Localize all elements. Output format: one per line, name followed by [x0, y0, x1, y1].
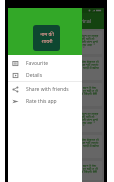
button[interactable]: Favourite [8, 57, 82, 69]
staticText: चाँद सी सूरत है तेरी फूलों सा बदन है तेर… [13, 85, 99, 99]
button[interactable]: तेरे नाम की शायरी दिल से लिखी है मैंने ह… [10, 109, 102, 132]
staticText: Rate this app [26, 98, 57, 105]
button[interactable]: तेरे नाम की शायरी दिल से लिखी है मैंने ह… [10, 31, 102, 54]
staticText: तेरे नाम की शायरी दिल से लिखी है मैंने ह… [13, 33, 99, 47]
staticText: Share with friends [26, 86, 69, 93]
staticText: नाम तेरा जुबां पे आता है हर पल यूँ ही बा… [13, 59, 99, 73]
button[interactable]: Rate this app [8, 95, 82, 107]
button[interactable]: नाम तेरा जुबां पे आता है हर पल यूँ ही बा… [10, 57, 102, 80]
button[interactable]: नाम तेरा जुबां पे आता है हर पल यूँ ही बा… [10, 135, 102, 158]
button[interactable]: Details [8, 69, 82, 81]
staticText: तेरे नाम की शायरी दिल से लिखी है मैंने ह… [13, 111, 99, 125]
button[interactable]: चाँद सी सूरत है तेरी फूलों सा बदन है तेर… [10, 161, 102, 180]
staticText: Details [26, 72, 43, 79]
button[interactable]: चाँद सी सूरत है तेरी फूलों सा बदन है तेर… [10, 83, 102, 106]
staticText: नाम की शायरी [40, 31, 54, 45]
button[interactable]: Share with friends [8, 83, 82, 95]
staticText: चाँद सी सूरत है तेरी फूलों सा बदन है तेर… [13, 163, 99, 177]
staticText: Shayari that become viral [20, 17, 92, 25]
staticText: Favourite [26, 60, 49, 67]
staticText: नाम तेरा जुबां पे आता है हर पल यूँ ही बा… [13, 137, 99, 151]
